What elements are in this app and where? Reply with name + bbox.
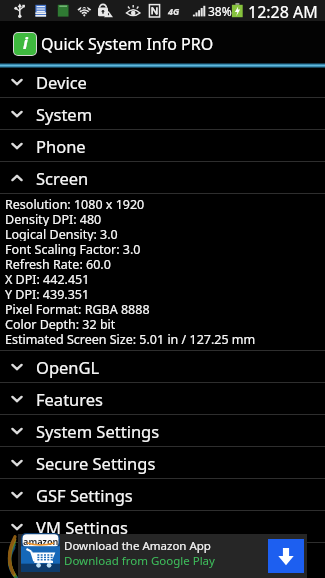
staticText: Logical Density: 3.0 bbox=[5, 226, 118, 241]
staticText: amazon bbox=[23, 535, 59, 547]
button[interactable]: Download the Amazon App bbox=[18, 534, 307, 578]
button[interactable]: Features bbox=[0, 383, 325, 415]
staticText: Device bbox=[36, 71, 87, 93]
staticText: Phone bbox=[36, 135, 86, 157]
staticText: VM Settings bbox=[36, 516, 128, 538]
button[interactable]: OpenGL bbox=[0, 351, 325, 383]
button[interactable]: Secure Settings bbox=[0, 447, 325, 479]
button[interactable]: Device bbox=[0, 66, 325, 98]
staticText: Quick System Info PRO bbox=[41, 33, 214, 55]
staticText: System bbox=[36, 103, 93, 125]
staticText: Resolution: 1080 x 1920 bbox=[5, 196, 145, 211]
staticText: Pixel Format: RGBA 8888 bbox=[5, 301, 150, 316]
staticText: Download from Google Play bbox=[64, 553, 215, 568]
other: Download bbox=[268, 539, 304, 573]
button[interactable]: System Settings bbox=[0, 415, 325, 447]
button[interactable]: i bbox=[0, 21, 325, 66]
button[interactable]: VM Settings bbox=[0, 511, 325, 543]
staticText: System Settings bbox=[36, 420, 160, 442]
staticText: Refresh Rate: 60.0 bbox=[5, 256, 111, 271]
staticText: Color Depth: 32 bit bbox=[5, 316, 116, 331]
staticText: Font Scaling Factor: 3.0 bbox=[5, 241, 141, 256]
staticText: Secure Settings bbox=[36, 452, 156, 474]
button[interactable]: GSF Settings bbox=[0, 479, 325, 511]
button[interactable]: Screen bbox=[0, 162, 325, 194]
staticText: OpenGL bbox=[36, 356, 100, 378]
staticText: 4G bbox=[168, 5, 180, 17]
button[interactable]: System bbox=[0, 98, 325, 130]
staticText: 38% bbox=[208, 3, 232, 19]
staticText: 12:28 AM bbox=[248, 1, 318, 22]
staticText: GSF Settings bbox=[36, 484, 133, 506]
staticText: Screen bbox=[36, 167, 89, 189]
staticText: Download the Amazon App bbox=[64, 538, 211, 553]
button[interactable]: Phone bbox=[0, 130, 325, 162]
staticText: i bbox=[23, 33, 28, 54]
staticText: Density DPI: 480 bbox=[5, 211, 102, 226]
staticText: Y DPI: 439.351 bbox=[5, 286, 90, 301]
staticText: X DPI: 442.451 bbox=[5, 271, 90, 286]
staticText: Features bbox=[36, 388, 103, 410]
staticText: Estimated Screen Size: 5.01 in / 127.25 … bbox=[5, 331, 256, 346]
